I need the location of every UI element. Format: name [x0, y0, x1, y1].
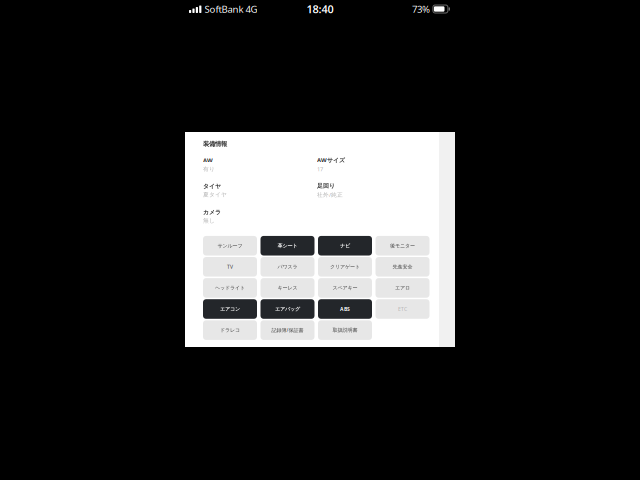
button[interactable]: 記録簿/保証書	[260, 320, 314, 340]
staticText: ドラレコ	[220, 327, 240, 333]
button[interactable]: クリアゲート	[318, 257, 372, 277]
button[interactable]: スペアキー	[318, 278, 372, 298]
button[interactable]: 後モニター	[375, 236, 429, 255]
button[interactable]: エアバッグ	[260, 299, 314, 319]
staticText: キーレス	[277, 285, 297, 291]
staticText: 足回り	[317, 182, 335, 190]
staticText: 社外/純正	[317, 191, 343, 199]
staticText: 後モニター	[390, 242, 415, 249]
button[interactable]: TV	[203, 257, 257, 277]
staticText: ヘッドライト	[215, 285, 245, 291]
staticText: TV	[227, 263, 233, 270]
button[interactable]: ナビ	[318, 236, 372, 255]
staticText: エアコン	[220, 306, 240, 312]
staticText: スペアキー	[332, 285, 357, 291]
staticText: ナビ	[340, 242, 350, 249]
staticText: 装備情報	[203, 140, 227, 148]
staticText: 革シート	[277, 242, 297, 249]
staticText: ABS	[340, 306, 350, 312]
staticText: SoftBank 4G	[204, 2, 257, 16]
button[interactable]: キーレス	[260, 278, 314, 298]
button[interactable]: ABS	[318, 299, 372, 319]
button[interactable]: 革シート	[260, 236, 314, 255]
staticText: AW	[203, 156, 213, 164]
staticText: 無し	[203, 217, 215, 224]
staticText: パワスラ	[277, 264, 297, 270]
staticText: エアバッグ	[275, 306, 300, 312]
staticText: カメラ	[203, 208, 221, 216]
staticText: 18:40	[306, 2, 333, 16]
staticText: サンルーフ	[217, 242, 242, 249]
button[interactable]: ヘッドライト	[203, 278, 257, 298]
staticText: 73%	[412, 2, 430, 16]
button[interactable]: 先進安全	[375, 257, 429, 277]
staticText: 記録簿/保証書	[271, 327, 303, 334]
staticText: 先進安全	[392, 264, 412, 270]
button[interactable]: ドラレコ	[203, 320, 257, 340]
button[interactable]: サンルーフ	[203, 236, 257, 255]
staticText: 夏タイヤ	[203, 191, 227, 198]
staticText: 17	[317, 165, 323, 173]
staticText: エアロ	[395, 285, 410, 291]
staticText: タイヤ	[203, 182, 221, 190]
staticText: クリアゲート	[330, 264, 360, 270]
staticText: 取扱説明書	[332, 327, 357, 333]
staticText: ETC	[398, 306, 407, 312]
button[interactable]: エアロ	[375, 278, 429, 298]
staticText: 有り	[203, 165, 215, 173]
button[interactable]: エアコン	[203, 299, 257, 319]
button[interactable]: 取扱説明書	[318, 320, 372, 340]
button[interactable]: パワスラ	[260, 257, 314, 277]
button[interactable]: ETC	[375, 299, 429, 319]
staticText: AWサイズ	[317, 156, 345, 164]
